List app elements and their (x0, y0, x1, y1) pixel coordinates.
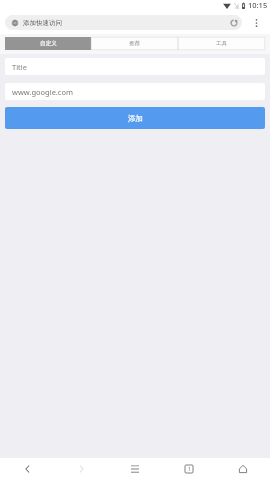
button[interactable]: 添加快速访问 (5, 15, 242, 30)
button[interactable]: Menu (108, 458, 162, 480)
button[interactable]: Tabs (162, 458, 216, 480)
button[interactable]: 推荐 (91, 37, 178, 50)
button[interactable]: 工具 (178, 37, 265, 50)
button[interactable]: www.google.com (5, 83, 265, 100)
button[interactable]: More options (247, 15, 265, 33)
staticText: 1 (188, 466, 191, 473)
staticText: 添加快速访问 (23, 19, 62, 27)
button[interactable]: 添加 (5, 107, 265, 129)
staticText: www.google.com (12, 87, 74, 97)
button[interactable]: Refresh (227, 16, 240, 29)
staticText: 工具 (216, 40, 227, 47)
staticText: 推荐 (129, 40, 140, 47)
staticText: 10:15 (248, 0, 268, 10)
staticText: Title (12, 62, 27, 72)
staticText: 添加 (128, 114, 143, 123)
button[interactable]: Back (0, 458, 54, 480)
staticText: 自定义 (40, 40, 57, 47)
button[interactable]: Home (216, 458, 270, 480)
button[interactable]: 自定义 (5, 37, 91, 50)
button[interactable]: Title (5, 58, 265, 75)
